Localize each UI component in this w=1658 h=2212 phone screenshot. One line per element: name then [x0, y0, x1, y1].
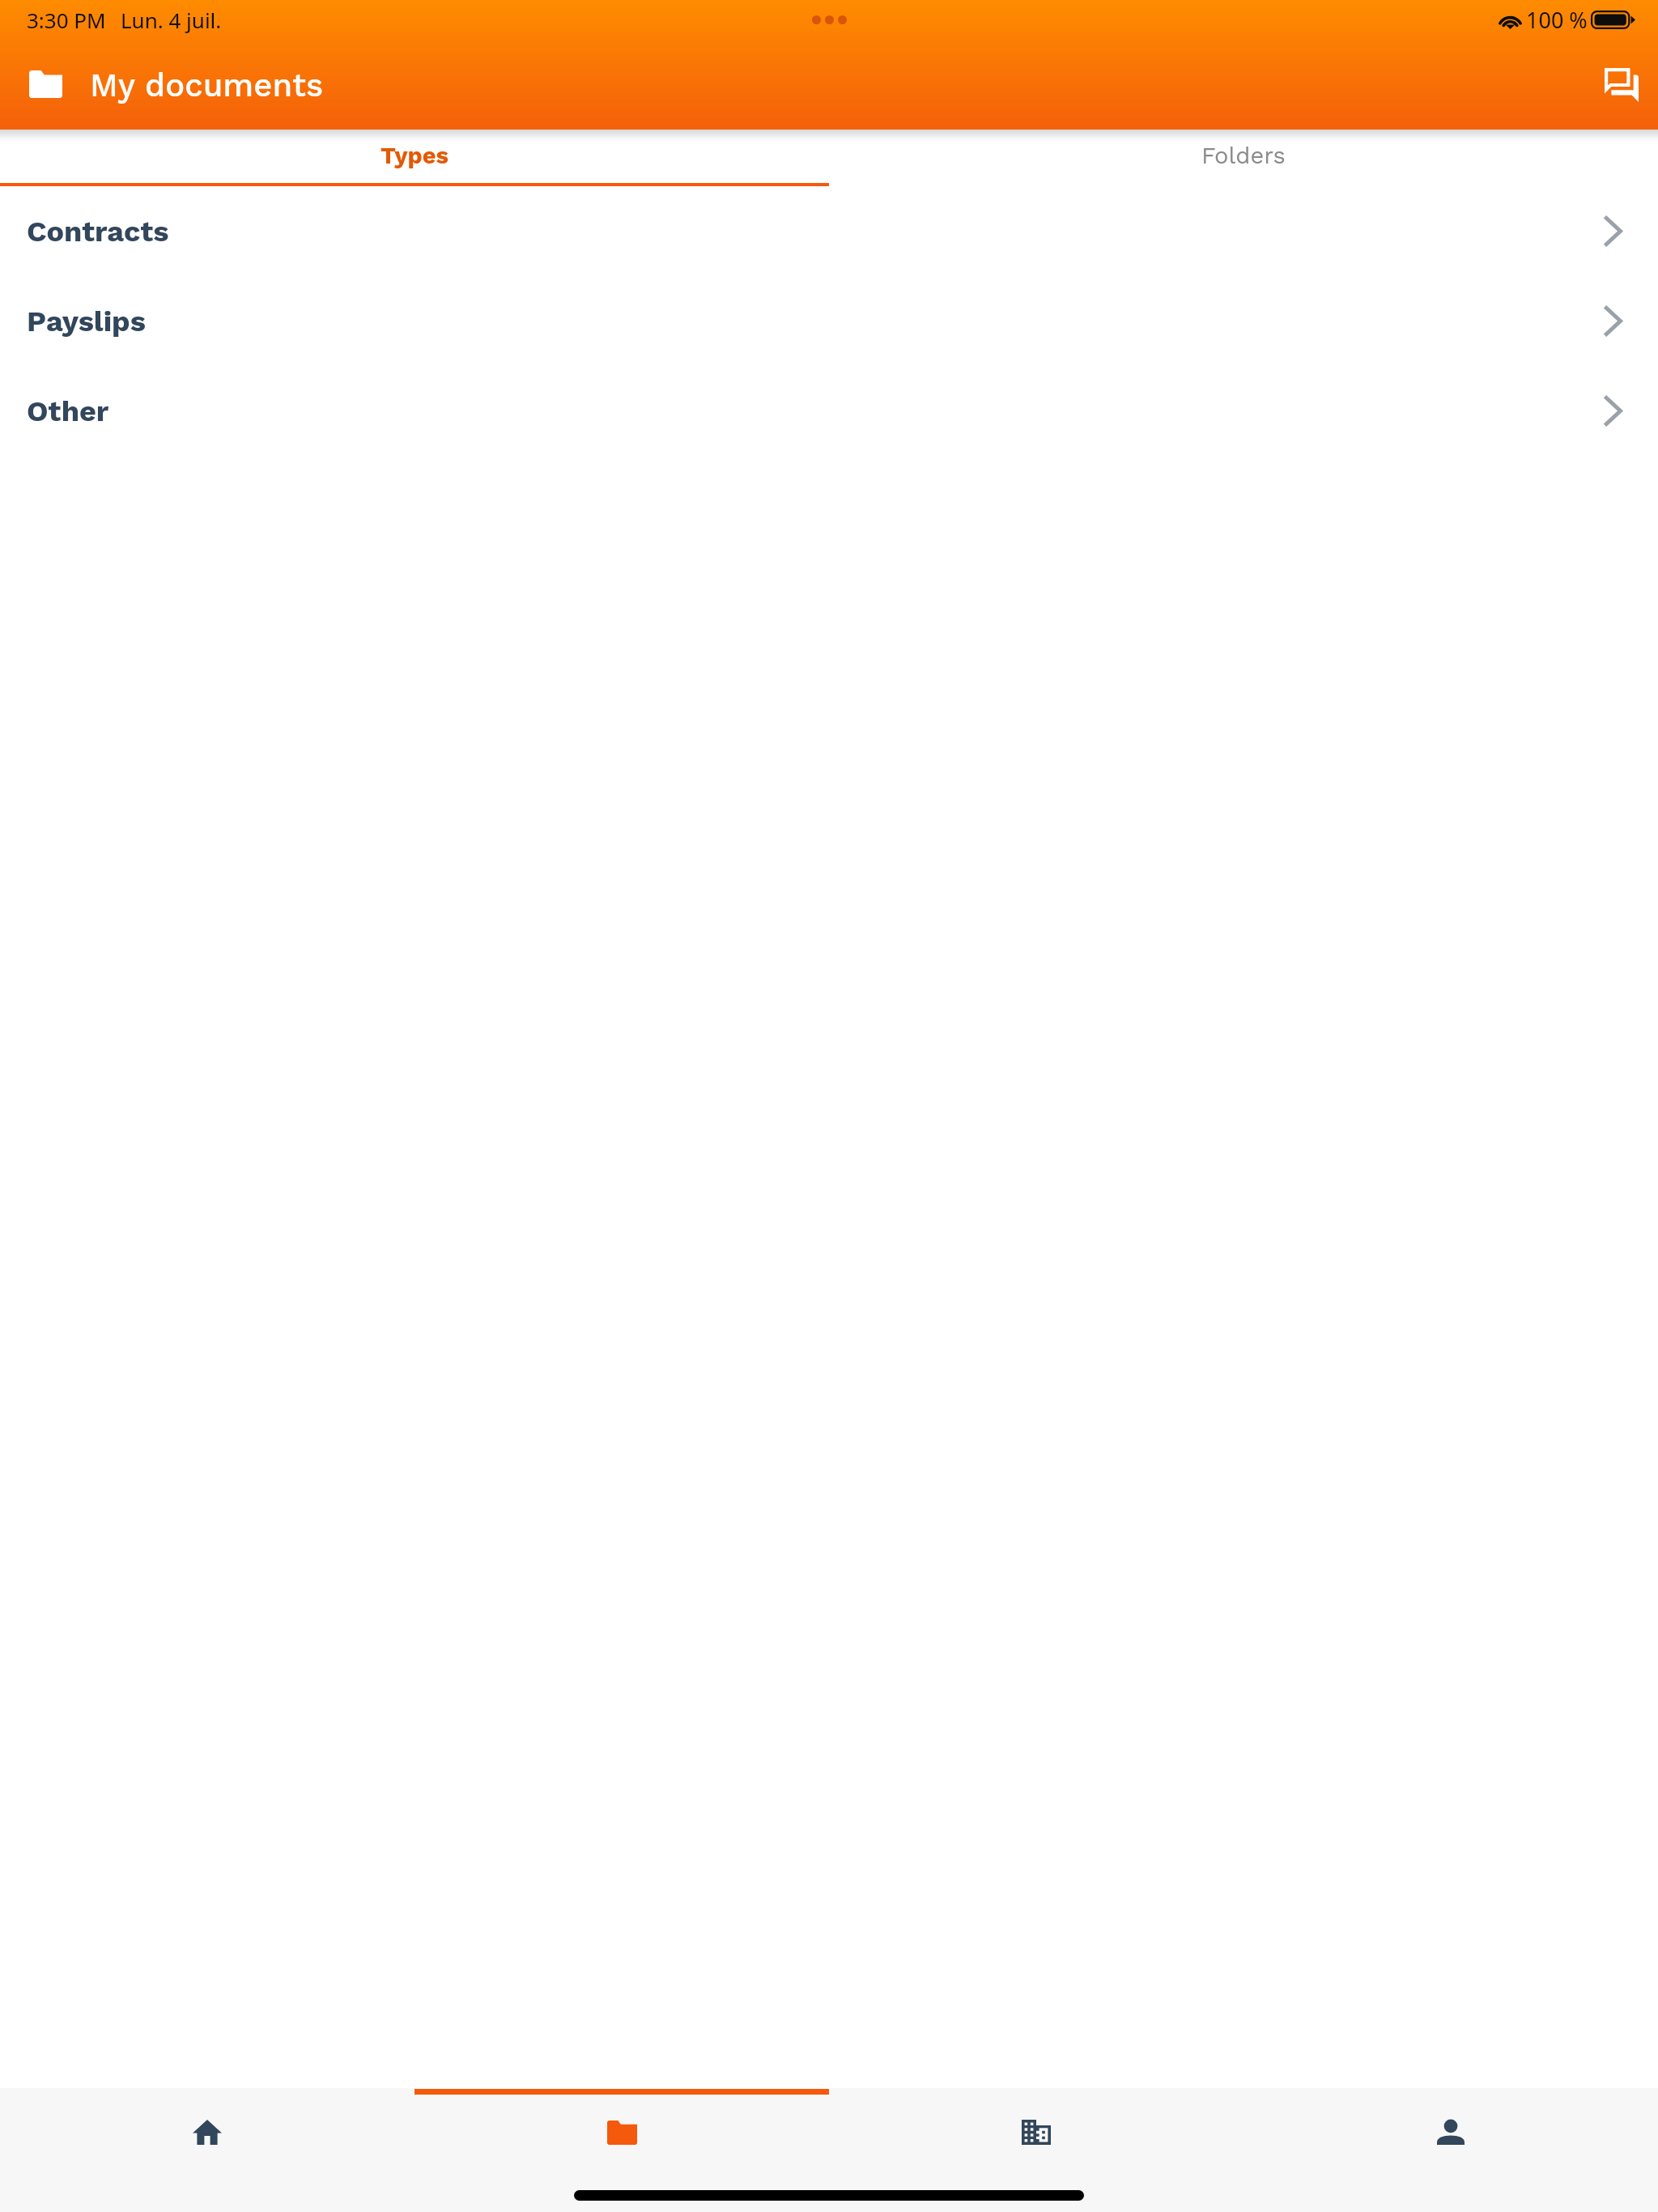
button[interactable]: Messages [1580, 45, 1658, 123]
button[interactable]: Profile [1243, 2088, 1658, 2176]
staticText: 100 % [1526, 5, 1588, 35]
button[interactable]: Home [0, 2088, 414, 2176]
staticText: Payslips [27, 304, 146, 338]
staticText: Folders [1201, 142, 1286, 169]
button[interactable]: Folders [829, 130, 1658, 186]
staticText: My documents [90, 66, 324, 104]
button[interactable]: Contracts [0, 186, 1658, 276]
button[interactable]: Other [0, 366, 1658, 456]
staticText: 3:30 PM [27, 6, 106, 34]
staticText: Types [380, 142, 449, 169]
button[interactable]: Documents [414, 2088, 829, 2176]
staticText: Other [27, 394, 109, 428]
staticText: Contracts [27, 215, 169, 249]
staticText: Lun. 4 juil. [121, 6, 222, 34]
button[interactable]: Company [829, 2088, 1243, 2176]
button[interactable]: Types [0, 130, 829, 186]
button[interactable]: Payslips [0, 276, 1658, 366]
